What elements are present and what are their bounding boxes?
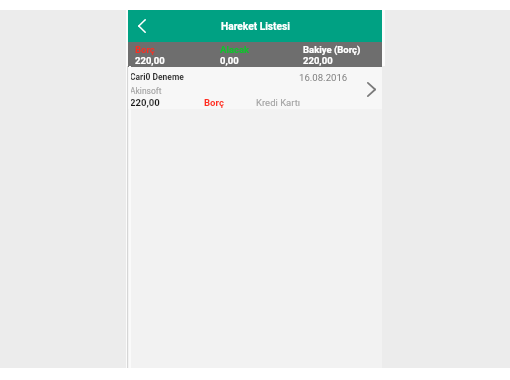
staticText: 220,00 <box>135 55 165 66</box>
staticText: 0,00 <box>220 55 239 66</box>
staticText: 16.08.2016 <box>299 72 348 83</box>
staticText: Alacak <box>220 44 250 55</box>
staticText: Hareket Listesi <box>221 21 290 33</box>
staticText: 220,00 <box>303 55 333 66</box>
staticText: Borç <box>204 97 256 108</box>
staticText: Akinsoft <box>130 86 162 96</box>
button[interactable]: Back <box>128 10 155 42</box>
staticText: Cari0 Deneme <box>130 72 184 82</box>
staticText: Kredi Kartı <box>256 97 301 108</box>
staticText: Bakiye (Borç) <box>303 44 361 55</box>
button[interactable]: Cari0 Deneme <box>128 67 382 109</box>
staticText: Borç <box>135 44 155 55</box>
staticText: 220,00 <box>130 97 204 108</box>
